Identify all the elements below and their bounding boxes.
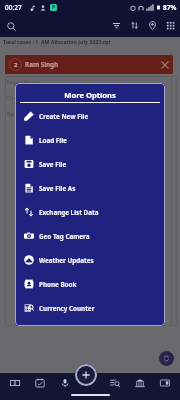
button[interactable]: Cash [5,373,25,393]
staticText: Save File As [39,184,76,193]
staticText: Rate [7,111,18,118]
button[interactable]: Location [147,20,158,31]
staticText: More Options [15,90,165,100]
staticText: Currency Counter [39,304,95,313]
button[interactable]: Add [80,373,100,393]
button[interactable]: Voice [55,373,75,393]
button[interactable]: Filter [111,20,122,31]
staticText: P [52,4,56,11]
staticText: 00:27 [5,3,22,12]
staticText: Total cases : 1 AM Allocation July 2023.… [3,38,111,45]
button[interactable]: Grid [165,20,176,31]
button[interactable]: Save File [15,152,165,176]
button[interactable]: Weather Updates [15,248,165,272]
button[interactable]: Currency Counter [15,296,165,320]
staticText: Save File [39,160,67,169]
button[interactable]: Add [75,364,97,386]
staticText: 87% [163,3,177,12]
button[interactable]: Search [4,19,18,33]
button[interactable]: Phone Book [15,272,165,296]
staticText: Phone Book [39,280,77,289]
button[interactable]: 2 [5,55,173,74]
staticText: Expert Import [7,79,40,86]
staticText: Create New File [39,112,89,121]
staticText: Ram Singh [25,60,59,69]
button[interactable]: Geo Tag Camera [15,224,165,248]
button[interactable]: Expand [159,351,174,366]
button[interactable]: Card [155,373,175,393]
staticText: Chart [7,95,20,102]
button[interactable]: Save File As [15,176,165,200]
staticText: Exchange List Data [39,208,99,217]
button[interactable]: Calendar [30,373,50,393]
button[interactable]: Sort [129,20,140,31]
button[interactable]: Load File [15,128,165,152]
button[interactable]: Bank [130,373,150,393]
button[interactable]: Search list [105,373,125,393]
staticText: 2 [14,61,18,69]
staticText: Geo Tag Camera [39,232,90,241]
staticText: Weather Updates [39,256,94,265]
button[interactable]: Create New File [15,104,165,128]
button[interactable]: Exchange List Data [15,200,165,224]
staticText: Load File [39,136,67,145]
button[interactable]: Close [158,58,172,72]
